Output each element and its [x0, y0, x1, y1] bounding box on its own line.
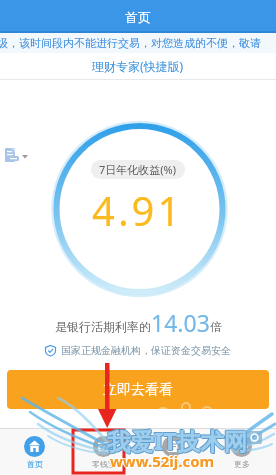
staticText: 理财专家(快捷版) [92, 58, 184, 74]
staticText: 国家正规金融机构，保证资金交易安全 [61, 344, 231, 357]
staticText: www.52ij.com [110, 451, 215, 471]
staticText: 我爱IT技术网 [106, 425, 247, 457]
staticText: www.52ij.com [111, 452, 216, 472]
staticText: www.52ij.com [109, 450, 214, 470]
staticText: 我爱IT技术网 [107, 426, 248, 458]
staticText: 首页 [125, 9, 151, 25]
staticText: 14.03 [151, 307, 210, 338]
staticText: 7日年化收益(%) [99, 162, 177, 177]
button[interactable]: 首页 [0, 429, 69, 475]
staticText: 首页 [27, 459, 43, 469]
staticText: 立即去看看 [103, 381, 173, 399]
button[interactable]: 零钱宝 [69, 429, 138, 475]
staticText: 是银行活期利率的 [55, 319, 151, 334]
button[interactable]: 级，该时间段内不能进行交易，对您造成的不便，敬请 [0, 33, 276, 53]
staticText: 我爱IT技术网 [107, 424, 248, 456]
staticText: 理财计划 [157, 459, 189, 469]
staticText: www.52ij.com [110, 452, 215, 472]
staticText: 我爱IT技术网 [106, 424, 247, 456]
staticText: www.52ij.com [109, 451, 214, 471]
staticText: 我爱IT技术网 [107, 425, 248, 457]
button[interactable]: 理财计划 [138, 429, 207, 475]
button[interactable]: 立即去看看 [7, 370, 269, 409]
staticText: 更多 [234, 459, 250, 469]
staticText: 4.91 [92, 183, 184, 237]
staticText: www.52ij.com [111, 451, 216, 471]
staticText: 级，该时间段内不能进行交易，对您造成的不便，敬请 [0, 36, 261, 50]
staticText: www.52ij.com [110, 450, 215, 470]
staticText: 零钱宝 [92, 459, 116, 469]
staticText: 倍 [210, 319, 222, 334]
staticText: 我爱IT技术网 [108, 426, 249, 458]
button[interactable]: 更多 [207, 429, 276, 475]
staticText: 我爱IT技术网 [108, 425, 249, 457]
